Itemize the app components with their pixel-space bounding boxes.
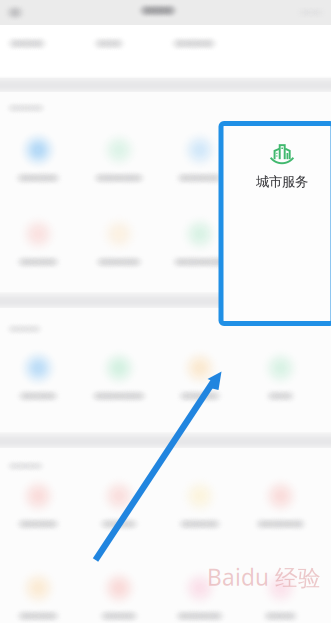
button[interactable]: Back bbox=[2, 0, 28, 25]
button[interactable]: App bbox=[159, 570, 240, 623]
staticText: Baidu 经验 bbox=[207, 562, 321, 592]
button[interactable]: App bbox=[159, 132, 240, 192]
button[interactable]: App bbox=[240, 570, 321, 623]
button[interactable]: App bbox=[79, 216, 159, 276]
button[interactable]: 城市服务 bbox=[221, 123, 331, 323]
button[interactable]: App bbox=[79, 132, 159, 192]
button[interactable]: App bbox=[0, 132, 79, 192]
button[interactable]: App bbox=[0, 350, 79, 410]
button[interactable]: App bbox=[0, 216, 79, 276]
button[interactable]: App bbox=[240, 132, 321, 192]
button[interactable]: App bbox=[79, 478, 159, 538]
button[interactable]: App bbox=[0, 570, 79, 623]
button[interactable]: App bbox=[240, 478, 321, 538]
staticText: 城市服务 bbox=[256, 173, 308, 190]
button[interactable]: App bbox=[79, 570, 159, 623]
button[interactable]: App bbox=[159, 350, 240, 410]
button[interactable]: App bbox=[0, 478, 79, 538]
button[interactable]: App bbox=[240, 350, 321, 410]
button[interactable]: App bbox=[159, 216, 240, 276]
button[interactable]: App bbox=[79, 350, 159, 410]
button[interactable]: App bbox=[159, 478, 240, 538]
